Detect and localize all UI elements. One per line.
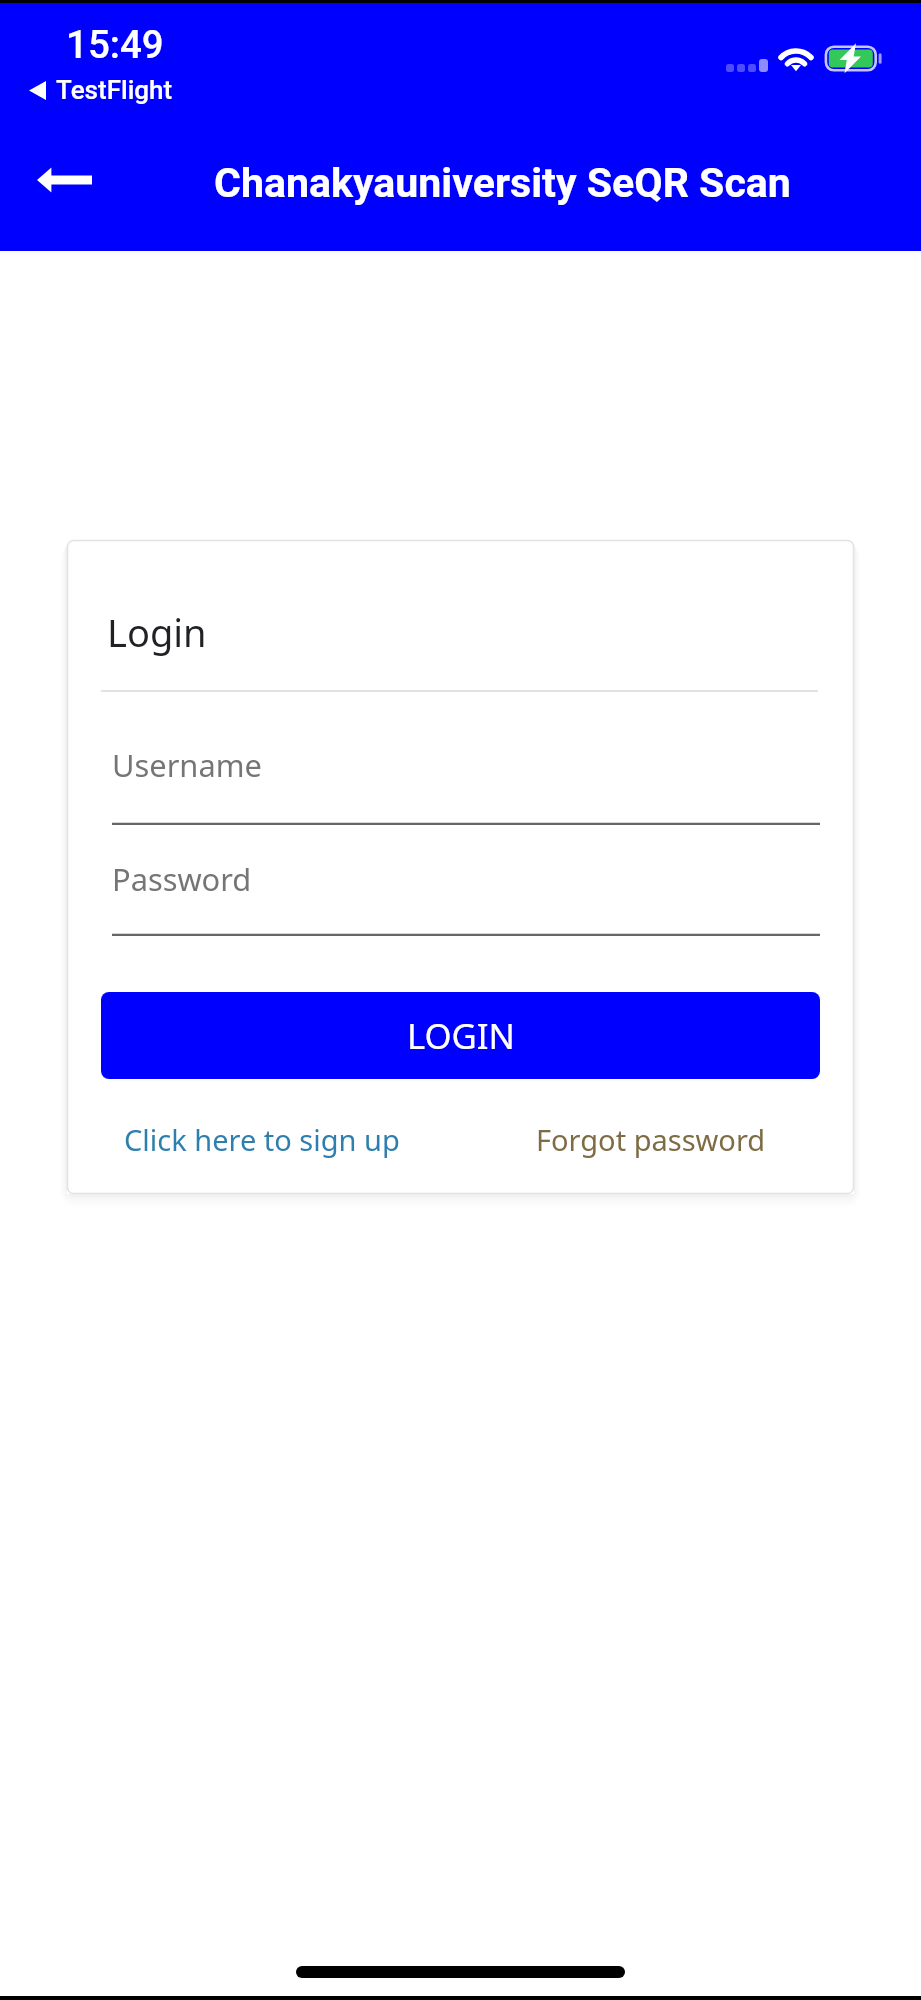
button[interactable]: LOGIN [101, 992, 820, 1079]
button[interactable]: Forgot password [520, 1106, 782, 1173]
staticText: Chanakyauniversity SeQR Scan [214, 159, 791, 207]
staticText: Forgot password [536, 1120, 766, 1159]
staticText: Login [107, 606, 207, 658]
button[interactable]: Username [112, 732, 820, 827]
staticText: Click here to sign up [124, 1120, 400, 1159]
staticText: 15:49 [66, 22, 164, 67]
button[interactable]: Password [112, 843, 820, 938]
button[interactable]: Click here to sign up [108, 1106, 416, 1173]
staticText: Password [112, 858, 252, 900]
staticText: LOGIN [407, 1012, 515, 1059]
staticText: TestFlight [56, 75, 173, 105]
staticText: Username [112, 744, 262, 786]
button[interactable]: Back [12, 142, 116, 218]
